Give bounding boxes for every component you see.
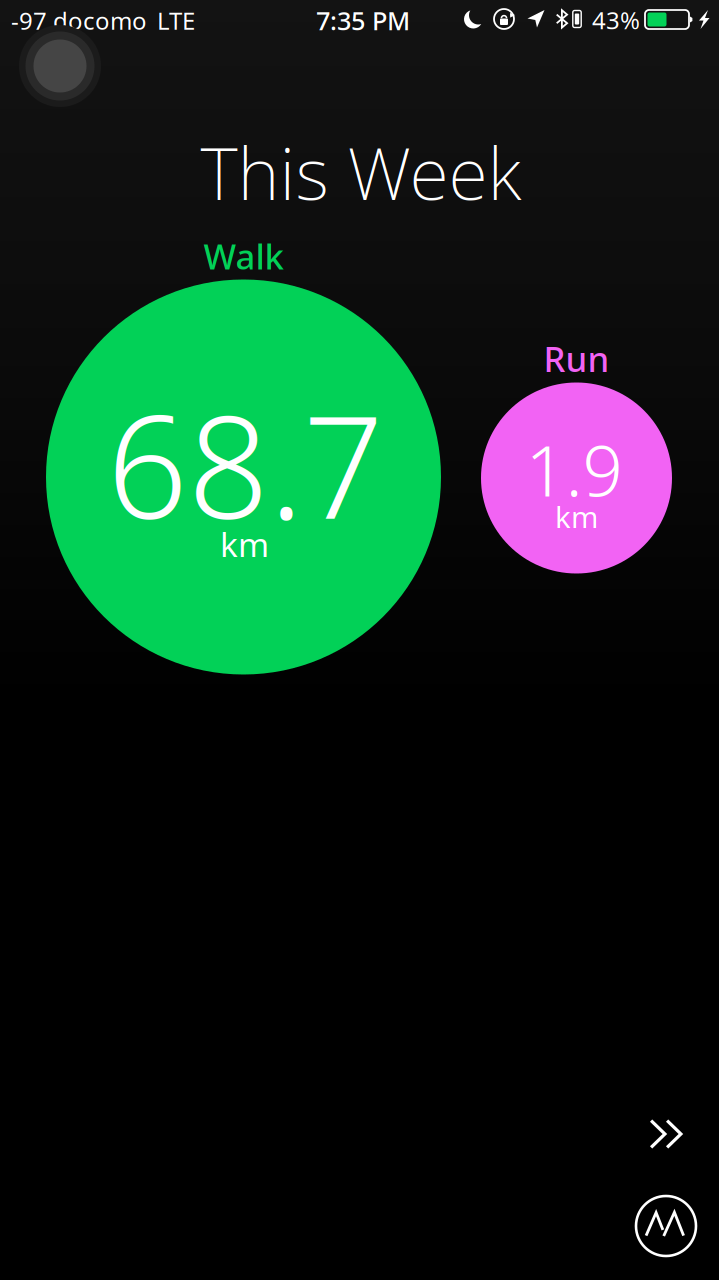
staticText: 43%	[592, 4, 640, 36]
staticText: 7:35 PM	[316, 4, 410, 37]
staticText: LTE	[157, 5, 195, 36]
button[interactable]: Walk 68.7 km	[46, 249, 441, 704]
staticText: km	[220, 522, 269, 566]
staticText: Run	[543, 335, 609, 381]
button[interactable]: AssistiveTouch	[17, 23, 103, 109]
staticText: 68.7	[107, 370, 384, 558]
staticText: This Week	[200, 124, 521, 220]
button[interactable]: Next	[635, 1105, 696, 1163]
button[interactable]: App home	[626, 1186, 706, 1266]
staticText: -97 docomo	[11, 5, 147, 36]
staticText: 1.9	[525, 422, 622, 516]
button[interactable]: Run 1.9 km	[481, 352, 672, 603]
staticText: km	[555, 497, 598, 536]
staticText: Walk	[203, 233, 283, 279]
